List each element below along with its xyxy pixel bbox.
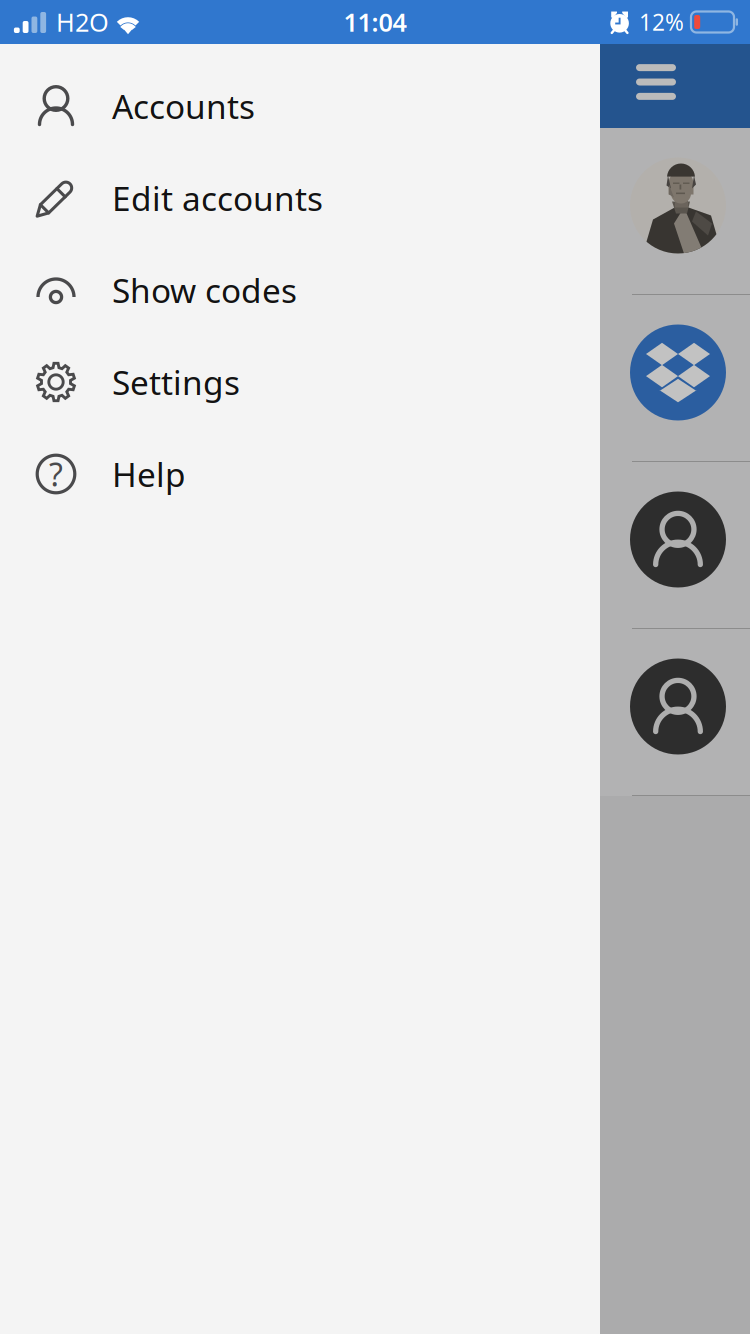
staticText: Help [112, 452, 186, 496]
button[interactable]: Show codes [0, 244, 600, 336]
staticText: 12% [639, 7, 684, 37]
staticText: Edit accounts [112, 176, 323, 220]
button[interactable]: Accounts [0, 60, 600, 152]
staticText: Show codes [112, 268, 297, 312]
staticText: ? [49, 453, 63, 495]
button[interactable]: Settings [0, 336, 600, 428]
staticText: H2O [56, 5, 109, 39]
button[interactable]: Edit accounts [0, 152, 600, 244]
button[interactable]: ? [0, 428, 600, 520]
staticText: 11:04 [343, 5, 406, 39]
button[interactable]: Menu [618, 44, 694, 128]
staticText: Accounts [112, 84, 255, 128]
staticText: Settings [112, 360, 240, 404]
